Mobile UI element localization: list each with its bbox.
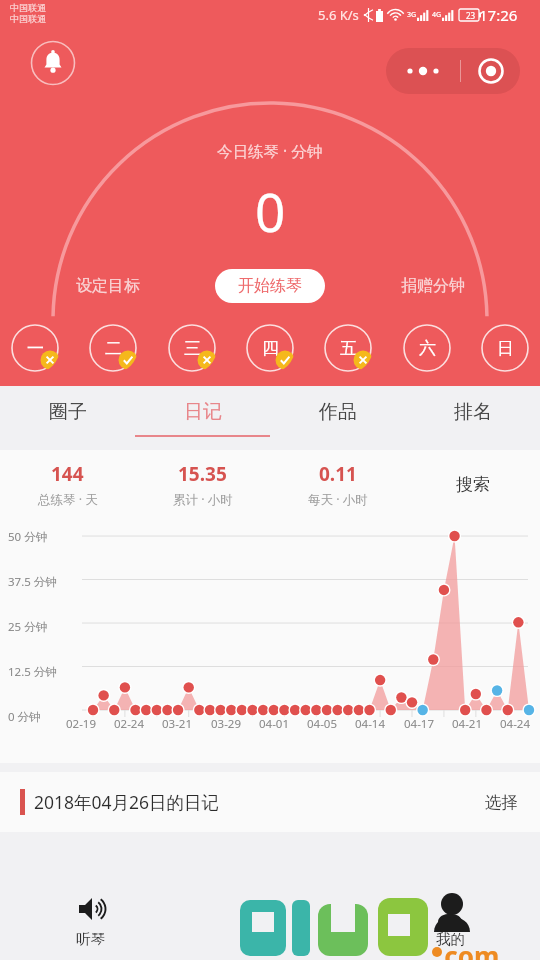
staticText: .com <box>437 938 500 960</box>
staticText: 144 <box>51 461 84 487</box>
staticText: 5.6 K/s <box>318 6 359 24</box>
staticText: 搜索 <box>456 474 490 495</box>
button[interactable]: 我的 <box>360 882 540 960</box>
button[interactable]: 二 <box>88 323 138 373</box>
staticText: 日 <box>497 338 514 359</box>
button[interactable]: 开始练琴 <box>215 269 325 303</box>
staticText: 圈子 <box>49 400 87 424</box>
staticText: 排名 <box>454 400 492 424</box>
button[interactable]: 排名 <box>405 386 540 450</box>
button[interactable]: 四 <box>245 323 295 373</box>
button[interactable]: 日 <box>480 323 530 373</box>
staticText: 作品 <box>319 400 357 424</box>
staticText: 2018年04月26日的日记 <box>34 790 220 814</box>
staticText: 17:26 <box>479 5 518 25</box>
button[interactable]: 设定目标 <box>66 270 150 302</box>
button[interactable]: Notifications <box>30 40 76 86</box>
staticText: 设定目标 <box>76 276 140 296</box>
staticText: 50 分钟 <box>8 529 48 545</box>
button[interactable]: 144 <box>0 450 135 518</box>
button[interactable]: 15.35 <box>135 450 270 518</box>
button[interactable]: 圈子 <box>0 386 135 450</box>
button[interactable]: More options <box>386 48 460 94</box>
button[interactable]: 六 <box>402 323 452 373</box>
staticText: 练琴 <box>256 930 285 948</box>
button[interactable]: 一 <box>10 323 60 373</box>
button[interactable]: Record <box>461 48 520 94</box>
staticText: 二 <box>105 338 122 359</box>
staticText: 今日练琴 · 分钟 <box>217 140 323 161</box>
button[interactable]: 日记 <box>135 386 270 450</box>
staticText: 04-01 <box>259 716 290 732</box>
staticText: 听琴 <box>76 930 105 948</box>
staticText: 五 <box>340 338 357 359</box>
staticText: 25 分钟 <box>8 619 48 635</box>
staticText: 03-21 <box>162 716 193 732</box>
button[interactable]: 听琴 <box>0 882 180 960</box>
staticText: 0 分钟 <box>8 709 41 725</box>
button[interactable]: 五 <box>323 323 373 373</box>
staticText: 04-05 <box>307 716 338 732</box>
staticText: 日记 <box>184 400 222 424</box>
staticText: 15.35 <box>178 461 227 487</box>
staticText: 0 <box>255 175 286 247</box>
staticText: 3G <box>407 10 417 20</box>
button[interactable]: 作品 <box>270 386 405 450</box>
staticText: 累计 · 小时 <box>173 491 233 508</box>
staticText: 中国联通 <box>10 13 46 24</box>
staticText: 4G <box>432 10 442 20</box>
button[interactable]: 0.11 <box>270 450 405 518</box>
staticText: 开始练琴 <box>238 276 302 296</box>
button[interactable]: 捐赠分钟 <box>391 270 475 302</box>
staticText: 四 <box>262 338 279 359</box>
button[interactable]: 练琴 <box>180 882 360 960</box>
staticText: 04-14 <box>355 716 386 732</box>
staticText: 总练琴 · 天 <box>38 491 98 508</box>
staticText: 04-21 <box>452 716 483 732</box>
staticText: 三 <box>184 338 201 359</box>
staticText: 23 <box>466 10 476 21</box>
staticText: 02-19 <box>66 716 97 732</box>
staticText: 选择 <box>485 792 518 813</box>
staticText: 六 <box>419 338 436 359</box>
button[interactable]: 2018年04月26日的日记 <box>0 772 540 832</box>
staticText: 03-29 <box>211 716 242 732</box>
button[interactable]: 三 <box>167 323 217 373</box>
staticText: 37.5 分钟 <box>8 574 57 590</box>
staticText: 04-17 <box>404 716 435 732</box>
staticText: 中国联通 <box>10 2 46 13</box>
staticText: 0.11 <box>319 461 357 487</box>
staticText: 12.5 分钟 <box>8 664 57 680</box>
staticText: 04-24 <box>500 716 531 732</box>
staticText: 捐赠分钟 <box>401 276 465 296</box>
staticText: 一 <box>27 338 44 359</box>
staticText: 每天 · 小时 <box>308 491 368 508</box>
button[interactable]: 搜索 <box>405 450 540 518</box>
staticText: 我的 <box>436 930 465 948</box>
staticText: 02-24 <box>114 716 145 732</box>
